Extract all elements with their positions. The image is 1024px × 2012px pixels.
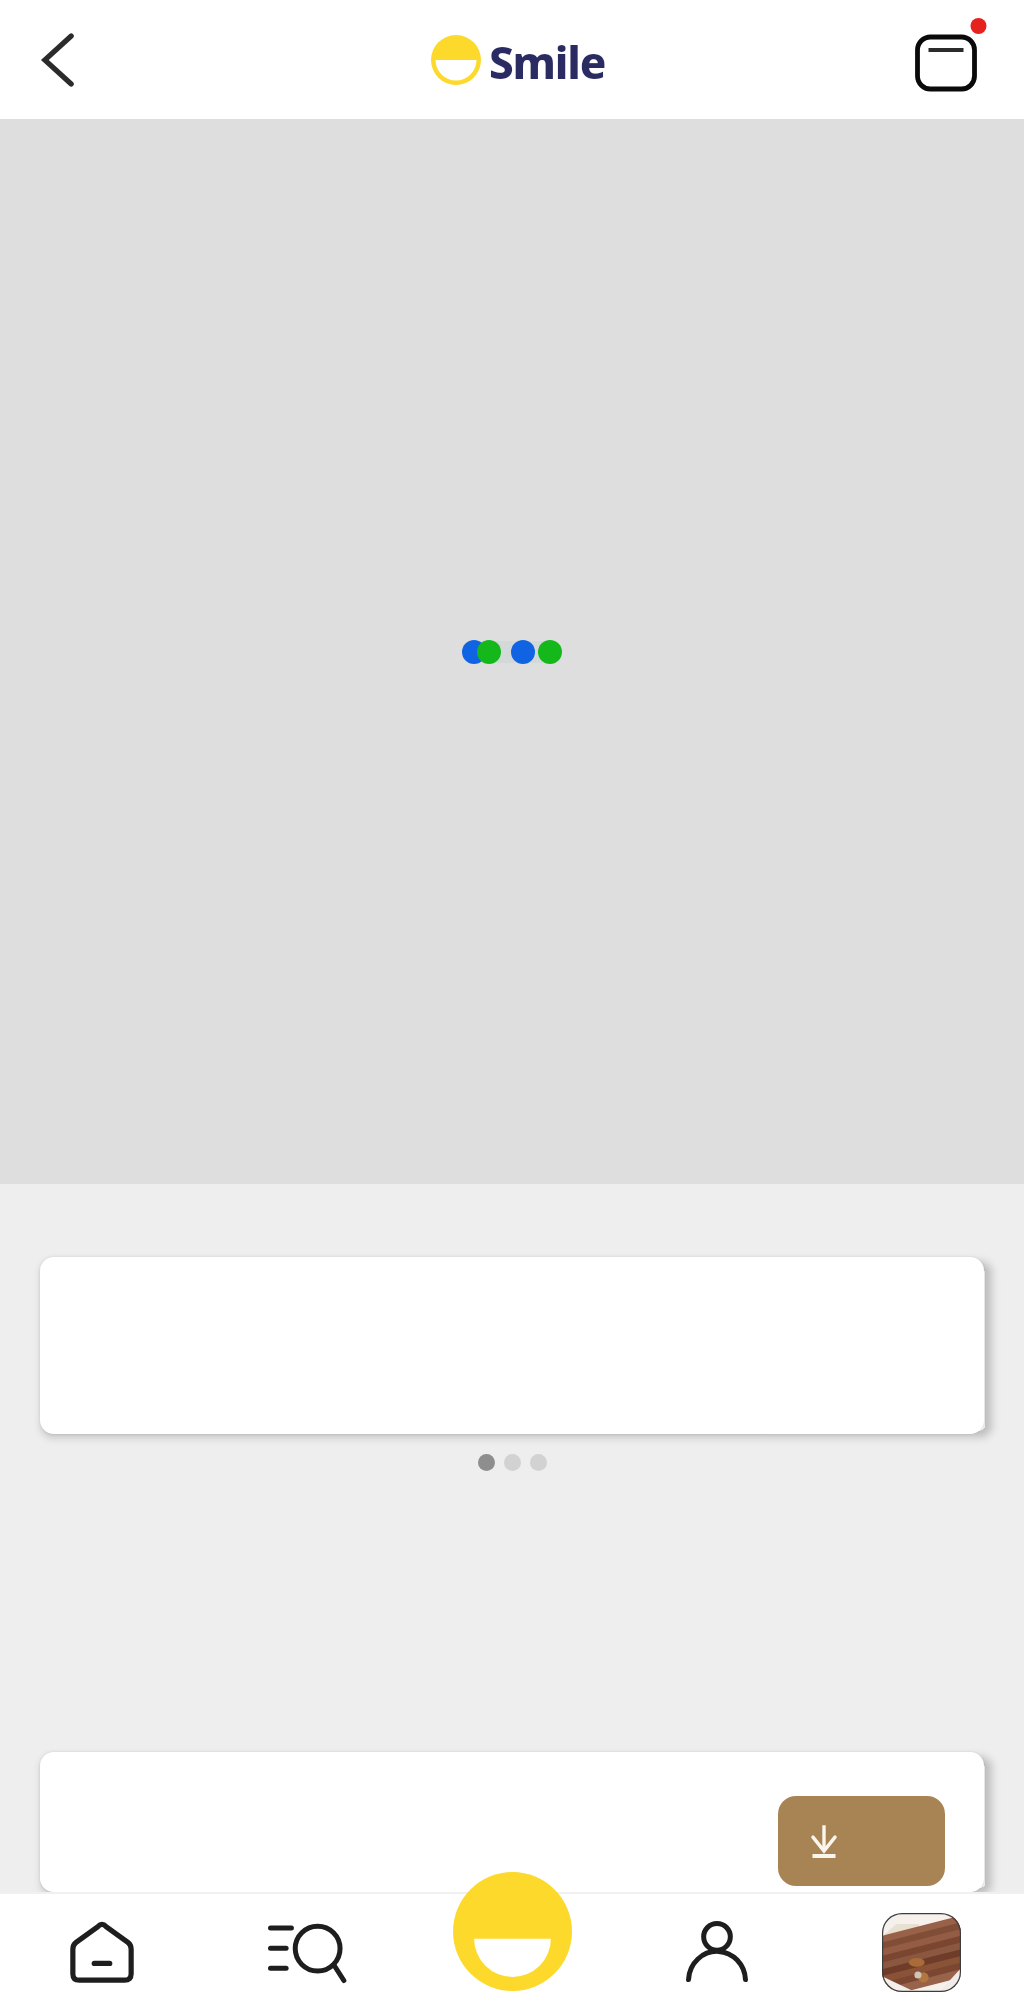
button[interactable]: Account (614, 1892, 819, 2012)
button[interactable]: Tabs (900, 10, 1000, 110)
button[interactable]: Smile assistant (453, 1872, 572, 1991)
button[interactable]: Back (14, 16, 102, 104)
button[interactable]: Download (778, 1796, 945, 1886)
button[interactable]: Home (0, 1892, 204, 2012)
button[interactable]: Download (40, 1752, 984, 1892)
staticText: Smile (489, 32, 606, 92)
button[interactable]: Recent item (819, 1892, 1024, 2012)
button[interactable]: Search (204, 1892, 409, 2012)
